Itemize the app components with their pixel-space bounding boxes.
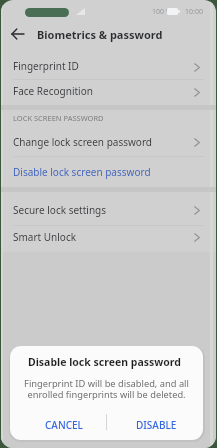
staticText: 100 % — [152, 7, 172, 17]
staticText: Face Recognition — [13, 84, 93, 98]
staticText: Change lock screen password — [13, 135, 152, 149]
button[interactable]: Change lock screen password — [1, 127, 216, 157]
staticText: CANCEL — [45, 418, 83, 432]
staticText: Secure lock settings — [13, 203, 106, 217]
button[interactable]: DISABLE — [106, 410, 203, 440]
button[interactable]: Disable lock screen password — [1, 157, 216, 187]
staticText: Smart Unlock — [13, 230, 77, 244]
button[interactable]: Smart Unlock — [1, 226, 216, 248]
staticText: Biometrics & password — [37, 27, 163, 42]
staticText: Disable lock screen password — [13, 165, 151, 179]
staticText: 10:00 — [185, 7, 203, 17]
button[interactable]: Face Recognition — [1, 80, 216, 105]
staticText: DISABLE — [136, 418, 177, 432]
staticText: Disable lock screen password — [28, 355, 181, 369]
staticText: Fingerprint ID — [13, 59, 79, 73]
staticText: LOCK SCREEN PASSWORD — [13, 113, 104, 123]
button[interactable] — [12, 29, 24, 39]
button[interactable]: Fingerprint ID — [1, 55, 216, 80]
button[interactable]: Secure lock settings — [1, 194, 216, 226]
button[interactable]: CANCEL — [10, 410, 106, 440]
staticText: Fingerprint ID will be disabled, and all… — [24, 377, 189, 400]
